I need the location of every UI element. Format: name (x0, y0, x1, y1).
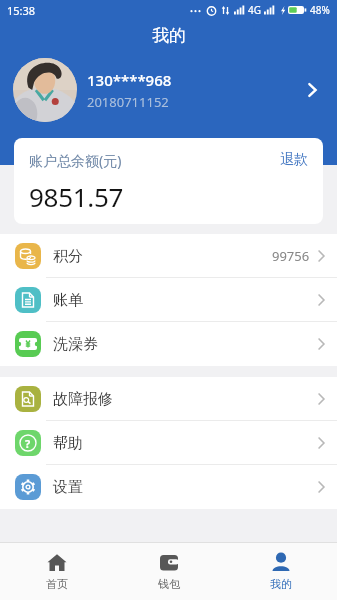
button[interactable]: 积分 (0, 234, 337, 278)
staticText: 9851.57 (29, 179, 124, 212)
staticText: 帮助 (53, 434, 83, 453)
staticText: 20180711152 (87, 93, 169, 111)
staticText: 4G (248, 3, 261, 17)
staticText: 首页 (46, 577, 68, 591)
staticText: 账单 (53, 291, 83, 310)
staticText: ? (25, 436, 31, 451)
staticText: 48% (310, 3, 330, 17)
staticText: 账户总余额(元) (29, 151, 122, 170)
staticText: 钱包 (158, 577, 180, 591)
staticText: 洗澡券 (53, 335, 98, 354)
staticText: 设置 (53, 478, 83, 497)
staticText: 我的 (152, 25, 186, 46)
button[interactable]: ? (0, 421, 337, 465)
staticText: 130****968 (87, 70, 172, 90)
staticText: 99756 (272, 247, 310, 265)
button[interactable]: 故障报修 (0, 377, 337, 421)
staticText: 积分 (53, 247, 83, 266)
button[interactable]: 设置 (0, 465, 337, 509)
staticText: 故障报修 (53, 390, 113, 409)
button[interactable]: 130****968 (13, 58, 317, 122)
button[interactable]: 账单 (0, 278, 337, 322)
staticText: 15:38 (7, 3, 36, 18)
button[interactable]: 我的 (225, 542, 337, 600)
button[interactable]: 首页 (0, 542, 113, 600)
button[interactable]: 退款 (280, 151, 308, 169)
button[interactable]: 钱包 (113, 542, 225, 600)
staticText: 我的 (270, 577, 292, 591)
button[interactable]: 洗澡券 (0, 322, 337, 366)
